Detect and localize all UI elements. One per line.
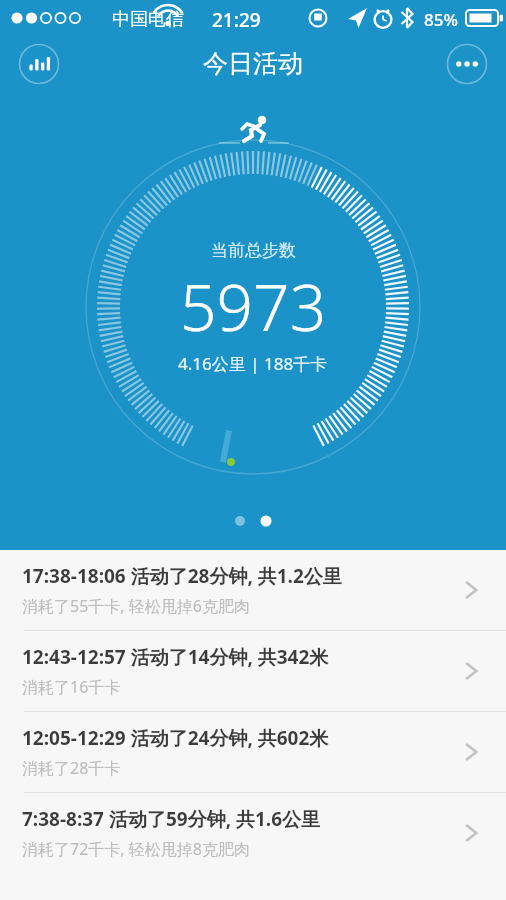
staticText: 4.16公里 | 188千卡 xyxy=(178,352,328,375)
staticText: 消耗了16千卡 xyxy=(22,676,121,698)
staticText: 消耗了55千卡, 轻松甩掉6克肥肉 xyxy=(22,595,250,617)
staticText: 85% xyxy=(424,8,458,31)
staticText: 今日活动 xyxy=(203,48,303,79)
button[interactable]: 7:38-8:37 活动了59分钟, 共1.6公里 xyxy=(0,793,506,873)
staticText: 17:38-18:06 活动了28分钟, 共1.2公里 xyxy=(22,563,342,589)
staticText: 5973 xyxy=(180,263,327,350)
button[interactable]: More options xyxy=(446,43,488,85)
staticText: 7:38-8:37 活动了59分钟, 共1.6公里 xyxy=(22,806,321,832)
button[interactable]: 17:38-18:06 活动了28分钟, 共1.2公里 xyxy=(0,550,506,630)
button[interactable]: 12:05-12:29 活动了24分钟, 共602米 xyxy=(0,712,506,792)
staticText: 消耗了72千卡, 轻松甩掉8克肥肉 xyxy=(22,838,250,860)
staticText: 21:29 xyxy=(212,7,261,33)
button[interactable]: Statistics xyxy=(18,43,60,85)
staticText: 12:05-12:29 活动了24分钟, 共602米 xyxy=(22,725,329,751)
staticText: 当前总步数 xyxy=(211,240,296,261)
button[interactable]: 12:43-12:57 活动了14分钟, 共342米 xyxy=(0,631,506,711)
staticText: 中国电信 xyxy=(112,8,184,31)
staticText: 12:43-12:57 活动了14分钟, 共342米 xyxy=(22,644,329,670)
staticText: 消耗了28千卡 xyxy=(22,757,121,779)
